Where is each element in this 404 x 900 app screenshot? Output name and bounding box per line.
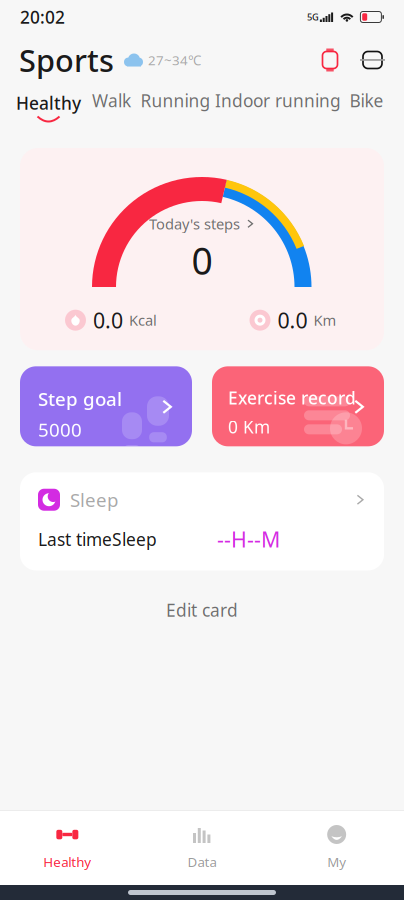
staticText: 27~34℃ bbox=[148, 51, 201, 69]
staticText: Last timeSleep bbox=[38, 528, 157, 551]
staticText: 5000 bbox=[38, 417, 82, 442]
staticText: 0.0 bbox=[277, 306, 307, 334]
button[interactable]: Bike bbox=[350, 91, 383, 109]
staticText: Edit card bbox=[166, 598, 238, 621]
staticText: Walk bbox=[92, 89, 131, 112]
staticText: Exercise record bbox=[228, 386, 356, 409]
button[interactable]: Healthy bbox=[19, 91, 78, 122]
staticText: My bbox=[327, 853, 346, 871]
staticText: Data bbox=[187, 853, 216, 871]
staticText: Healthy bbox=[43, 853, 91, 871]
button[interactable]: Exercise record bbox=[212, 366, 384, 446]
button[interactable]: Sleep bbox=[0, 446, 404, 570]
staticText: 0.0 bbox=[93, 306, 123, 334]
button[interactable]: Today's steps bbox=[149, 214, 255, 233]
staticText: Km bbox=[313, 310, 336, 330]
staticText: 20:02 bbox=[20, 5, 65, 28]
staticText: Kcal bbox=[129, 310, 157, 330]
staticText: Running bbox=[140, 89, 210, 112]
button[interactable]: Watch bbox=[322, 48, 338, 71]
staticText: Step goal bbox=[38, 386, 122, 411]
button[interactable]: My bbox=[269, 811, 404, 885]
staticText: 0 bbox=[191, 235, 212, 285]
staticText: Bike bbox=[349, 89, 383, 112]
staticText: 5G bbox=[307, 11, 319, 23]
button[interactable]: Walk bbox=[94, 91, 129, 109]
button[interactable]: Healthy bbox=[0, 811, 135, 885]
staticText: Healthy bbox=[16, 91, 81, 114]
staticText: Sports bbox=[19, 40, 114, 80]
button[interactable]: Running bbox=[145, 91, 206, 109]
button[interactable]: Data bbox=[135, 811, 269, 885]
staticText: Today's steps bbox=[149, 214, 240, 233]
staticText: Sleep bbox=[70, 487, 118, 512]
button[interactable]: Edit card bbox=[0, 570, 404, 641]
button[interactable]: Step goal bbox=[20, 366, 192, 446]
staticText: --H--M bbox=[217, 525, 280, 553]
button[interactable]: Indoor running bbox=[222, 91, 334, 109]
staticText: Indoor running bbox=[215, 89, 341, 112]
button[interactable]: Scan bbox=[360, 51, 385, 69]
staticText: 0 Km bbox=[228, 415, 270, 438]
